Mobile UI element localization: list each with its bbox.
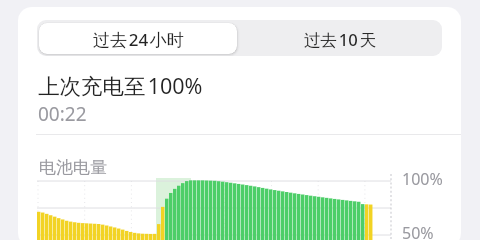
- staticText: 过去 10 天: [304, 28, 377, 51]
- staticText: 电池电量: [39, 157, 107, 178]
- staticText: 50%: [402, 222, 434, 240]
- staticText: 100%: [402, 168, 443, 190]
- staticText: 上次充电至 100%: [38, 71, 203, 100]
- staticText: 过去 24 小时: [93, 28, 184, 51]
- button[interactable]: 过去 10 天: [238, 20, 442, 56]
- button[interactable]: 过去 24 小时: [37, 20, 238, 56]
- staticText: 00:22: [38, 101, 87, 127]
